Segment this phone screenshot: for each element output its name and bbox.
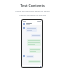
staticText: Names are given of the site [19, 14, 46, 17]
button[interactable] [23, 60, 41, 63]
button[interactable]: Send [22, 65, 42, 67]
button[interactable] [23, 39, 41, 46]
button[interactable] [23, 55, 41, 58]
button[interactable] [23, 34, 41, 37]
button[interactable]: Test Contents [20, 3, 45, 8]
button[interactable]: Contact avatar [22, 22, 42, 25]
button[interactable] [23, 27, 41, 32]
staticText: Name and versions fields for which [15, 10, 50, 13]
button[interactable] [23, 48, 41, 53]
